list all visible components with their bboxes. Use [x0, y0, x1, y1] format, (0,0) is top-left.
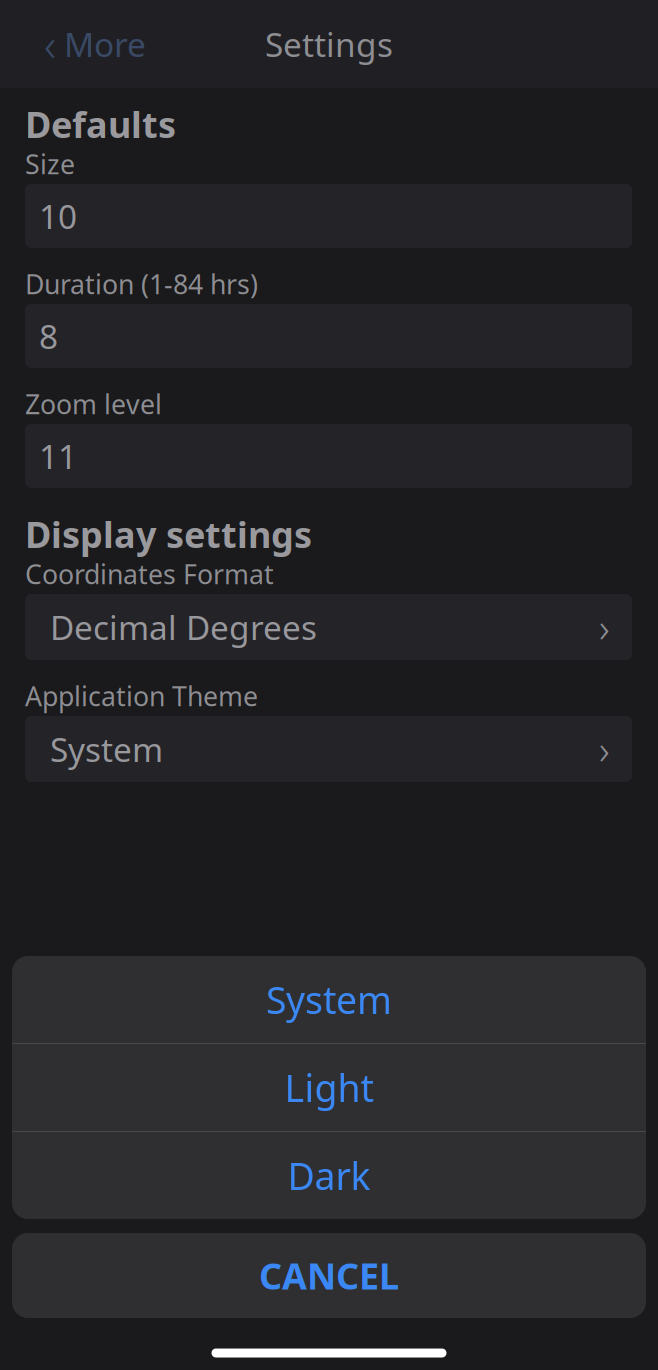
staticText: 8 [39, 314, 58, 358]
staticText: System [266, 975, 392, 1024]
staticText: Light [284, 1063, 373, 1112]
staticText: Defaults [25, 100, 176, 148]
staticText: Decimal Degrees [50, 605, 317, 649]
staticText: Settings [265, 22, 393, 66]
staticText: Application Theme [25, 678, 258, 714]
button[interactable]: System [25, 716, 632, 782]
staticText: › [599, 600, 610, 653]
button[interactable]: System [12, 956, 646, 1043]
button[interactable]: Dark [12, 1132, 646, 1219]
staticText: Duration (1-84 hrs) [25, 266, 258, 302]
staticText: More [64, 22, 146, 66]
button[interactable]: ‹ [30, 4, 160, 84]
staticText: › [599, 722, 610, 775]
staticText: Size [25, 146, 75, 182]
staticText: Dark [287, 1151, 370, 1200]
staticText: ‹ [44, 14, 56, 74]
button[interactable]: Decimal Degrees [25, 594, 632, 660]
staticText: 11 [39, 434, 77, 478]
staticText: Display settings [25, 510, 312, 558]
button[interactable]: CANCEL [12, 1233, 646, 1318]
staticText: System [50, 727, 163, 771]
staticText: CANCEL [259, 1252, 399, 1299]
staticText: Zoom level [25, 386, 162, 422]
staticText: Coordinates Format [25, 556, 274, 592]
staticText: 10 [39, 194, 77, 238]
button[interactable]: Light [12, 1044, 646, 1131]
